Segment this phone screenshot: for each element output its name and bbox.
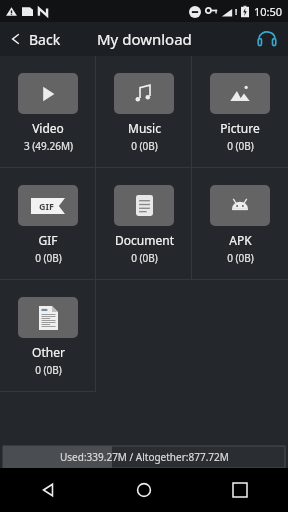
button[interactable]: APK (192, 168, 288, 279)
staticText: 3 (49.26M) (24, 139, 73, 153)
button[interactable]: GIF (0, 168, 96, 279)
staticText: Music (128, 120, 161, 136)
staticText: ! (235, 6, 238, 17)
button[interactable]: Home (96, 468, 192, 512)
staticText: 10:50 (254, 4, 283, 19)
staticText: 0 (0B) (131, 139, 158, 153)
staticText: Document (115, 232, 174, 248)
staticText: Picture (220, 120, 260, 136)
staticText: 0 (0B) (227, 251, 254, 265)
staticText: Video (32, 120, 64, 136)
staticText: 0 (0B) (35, 251, 62, 265)
button[interactable]: Recent apps (192, 468, 288, 512)
staticText: My download (97, 29, 192, 49)
staticText: GIF (38, 232, 58, 248)
staticText: Back (29, 30, 61, 49)
staticText: Other (32, 344, 65, 360)
button[interactable]: Other (0, 280, 96, 391)
staticText: 0 (0B) (35, 363, 62, 377)
staticText: APK (229, 232, 252, 248)
staticText: Used:339.27M / Altogether:877.72M (60, 450, 229, 464)
button[interactable]: Document (96, 168, 192, 279)
button[interactable]: Headphones (246, 22, 288, 56)
staticText: 0 (0B) (131, 251, 158, 265)
button[interactable]: Picture (192, 56, 288, 167)
staticText: GIF (39, 200, 54, 212)
staticText: 0 (0B) (227, 139, 254, 153)
button[interactable]: Video (0, 56, 96, 167)
button[interactable]: Back (0, 468, 96, 512)
button[interactable]: Back (0, 22, 69, 56)
button[interactable]: Music (96, 56, 192, 167)
